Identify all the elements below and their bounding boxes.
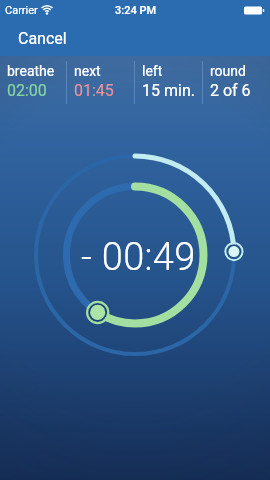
- staticText: 3:24 PM: [115, 4, 157, 17]
- staticText: round: [210, 63, 246, 79]
- button[interactable]: Cancel: [18, 29, 67, 48]
- staticText: 15 min.: [142, 81, 195, 100]
- button[interactable]: left: [135, 56, 202, 112]
- staticText: 01:45: [74, 81, 114, 100]
- button[interactable]: round: [203, 56, 270, 112]
- staticText: Cancel: [18, 29, 67, 48]
- button[interactable]: breathe: [0, 56, 66, 112]
- staticText: breathe: [7, 63, 55, 79]
- button[interactable]: next: [67, 56, 134, 112]
- staticText: 2 of 6: [210, 81, 251, 100]
- staticText: Carrier: [5, 4, 38, 17]
- staticText: left: [142, 63, 163, 79]
- staticText: - 00:49: [81, 235, 196, 280]
- staticText: 02:00: [7, 81, 47, 100]
- staticText: next: [74, 63, 101, 79]
